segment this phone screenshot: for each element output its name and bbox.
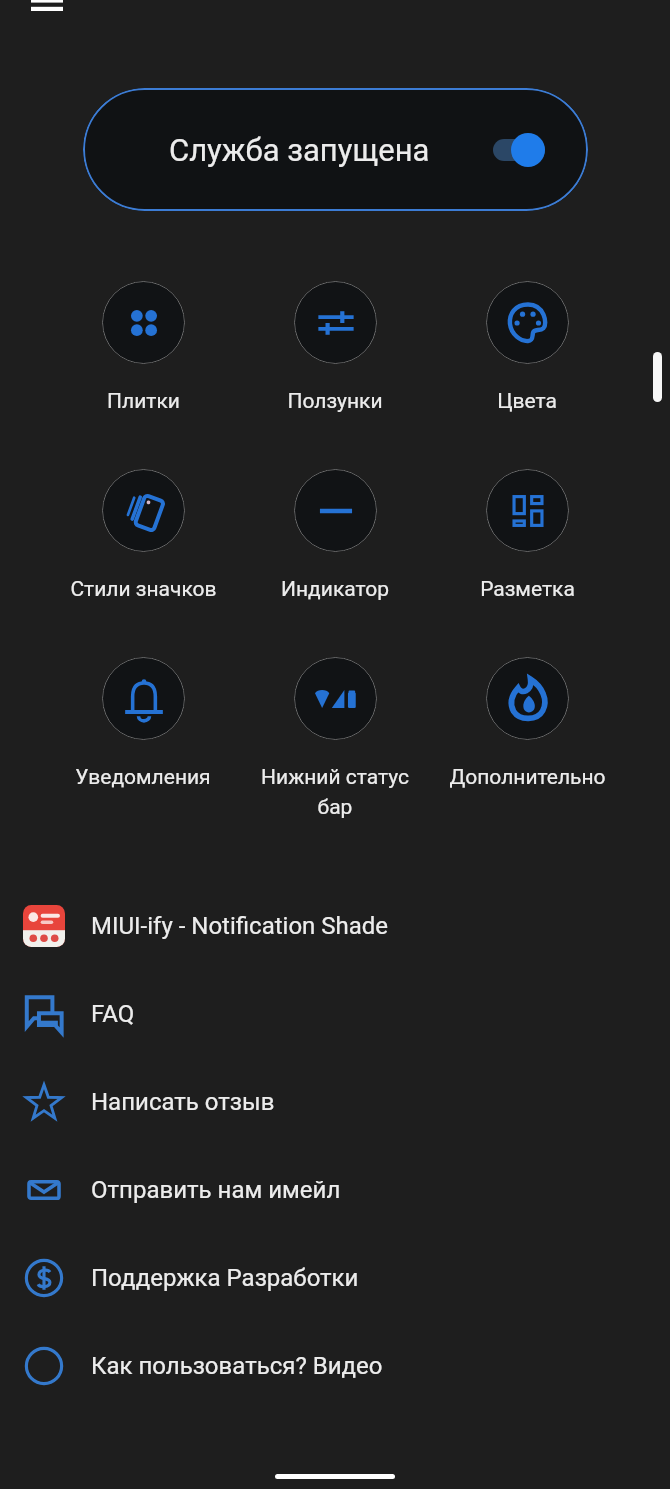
button[interactable]: Поддержка Разработки — [0, 1234, 670, 1322]
button[interactable]: Нижний статус бар — [250, 657, 420, 819]
staticText: MIUI-ify - Notification Shade — [91, 912, 389, 940]
staticText: Ползунки — [287, 389, 383, 414]
button[interactable]: MIUI-ify - Notification Shade — [0, 882, 670, 970]
staticText: Отправить нам имейл — [91, 1176, 341, 1204]
staticText: Как пользоваться? Видео — [91, 1352, 383, 1380]
staticText: Разметка — [480, 577, 575, 602]
button[interactable]: Уведомления — [58, 657, 228, 790]
staticText: FAQ — [91, 1000, 135, 1028]
staticText: Уведомления — [75, 765, 211, 790]
button[interactable]: Написать отзыв — [0, 1058, 670, 1146]
button[interactable]: Служба запущена — [83, 88, 588, 211]
button[interactable]: Индикатор — [250, 469, 420, 602]
staticText: Стили значков — [70, 577, 217, 602]
staticText: Цвета — [497, 389, 557, 414]
staticText: Написать отзыв — [91, 1088, 275, 1116]
button[interactable]: Разметка — [442, 469, 612, 602]
button[interactable]: Как пользоваться? Видео — [0, 1322, 670, 1410]
button[interactable]: Цвета — [442, 281, 612, 414]
staticText: Поддержка Разработки — [91, 1264, 359, 1292]
staticText: Индикатор — [281, 577, 389, 602]
button[interactable]: Отправить нам имейл — [0, 1146, 670, 1234]
button[interactable]: Menu — [15, 0, 79, 32]
button[interactable]: Ползунки — [250, 281, 420, 414]
button[interactable]: Стили значков — [58, 469, 228, 602]
button[interactable]: Дополнительно — [442, 657, 612, 790]
staticText: Плитки — [107, 389, 180, 414]
staticText: Дополнительно — [449, 765, 606, 790]
button[interactable]: Плитки — [58, 281, 228, 414]
staticText: Служба запущена — [169, 132, 430, 168]
staticText: Нижний статус бар — [250, 765, 420, 819]
button[interactable]: FAQ — [0, 970, 670, 1058]
